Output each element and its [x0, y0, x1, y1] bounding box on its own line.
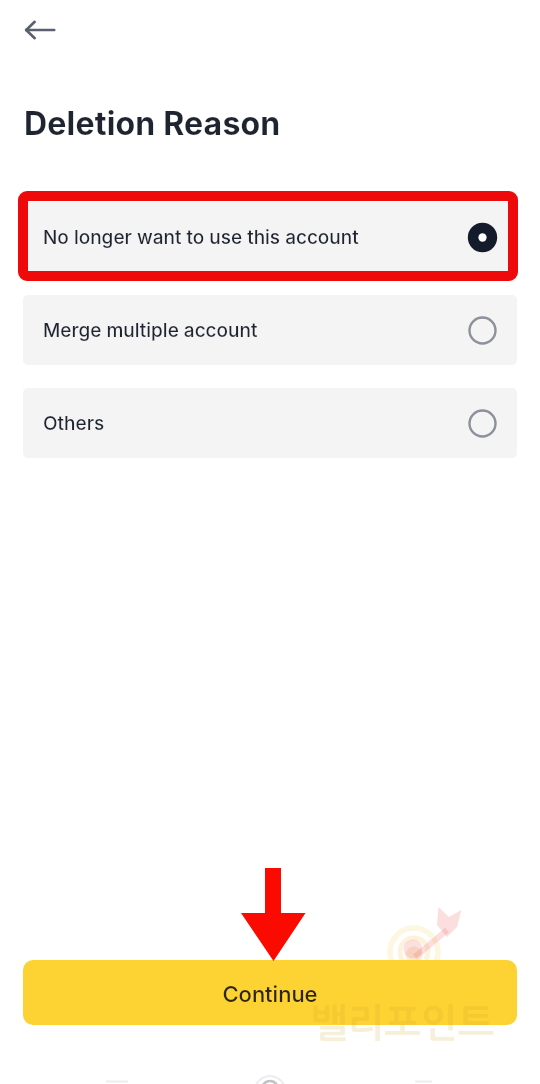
staticText: Others	[43, 412, 105, 435]
staticText: No longer want to use this account	[43, 226, 359, 249]
staticText: Merge multiple account	[43, 319, 258, 342]
button[interactable]: Others	[23, 388, 517, 458]
button[interactable]: Back	[12, 2, 68, 58]
staticText: 밸리포인트	[311, 1004, 495, 1043]
button[interactable]: Continue	[23, 960, 517, 1025]
button[interactable]: No longer want to use this account	[23, 202, 517, 272]
staticText: Deletion Reason	[24, 104, 281, 143]
staticText: Continue	[222, 981, 318, 1008]
button[interactable]: Merge multiple account	[23, 295, 517, 365]
